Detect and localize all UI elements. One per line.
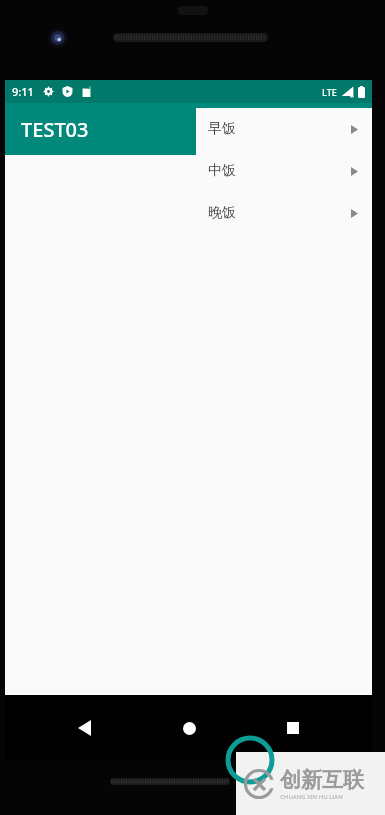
staticText: 9:11: [12, 84, 34, 99]
staticText: 创新互联: [280, 767, 364, 793]
button[interactable]: 早饭: [196, 108, 372, 150]
staticText: LTE: [322, 86, 337, 98]
button[interactable]: Home: [163, 702, 215, 754]
staticText: 早饭: [208, 120, 236, 138]
button[interactable]: Recent apps: [267, 702, 319, 754]
staticText: CHUANG XIN HU LIAN: [280, 793, 343, 801]
staticText: 晚饭: [208, 204, 236, 222]
button[interactable]: Back: [58, 702, 110, 754]
button[interactable]: 晚饭: [196, 192, 372, 234]
button[interactable]: 中饭: [196, 150, 372, 192]
staticText: 中饭: [208, 162, 236, 180]
staticText: TEST03: [21, 116, 89, 143]
